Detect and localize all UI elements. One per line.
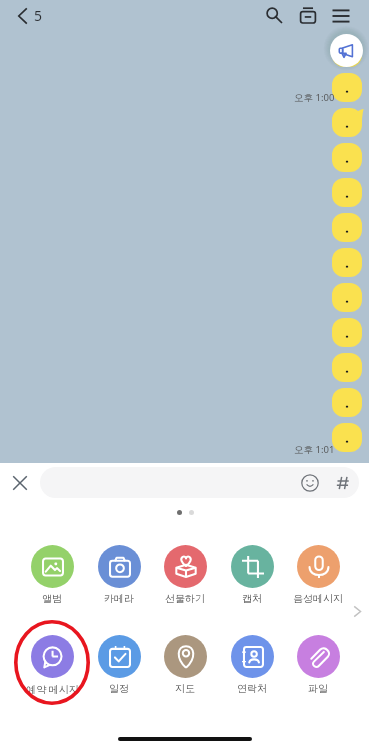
button[interactable]: 음성메시지 [284, 545, 352, 605]
button[interactable]: Message bubble [332, 73, 362, 102]
staticText: 연락처 [237, 682, 267, 695]
button[interactable]: Message bubble [332, 108, 362, 137]
button[interactable]: 캡처 [218, 545, 286, 605]
button[interactable]: 예약 메시지 [18, 635, 86, 696]
staticText: 캡처 [242, 592, 262, 605]
button[interactable]: 카메라 [85, 545, 153, 605]
staticText: 5 [34, 6, 43, 25]
button[interactable]: 지도 [151, 635, 219, 695]
staticText: 오후 1:01 [294, 443, 335, 456]
staticText: 예약 메시지 [26, 682, 79, 696]
button[interactable]: 파일 [284, 635, 352, 695]
staticText: 선물하기 [165, 592, 205, 605]
button[interactable]: Message bubble [332, 178, 362, 207]
button[interactable]: Hashtag [332, 472, 354, 494]
button[interactable]: Message bubble [332, 213, 362, 242]
staticText: 음성메시지 [293, 592, 343, 605]
button[interactable]: Message bubble [332, 423, 362, 452]
button[interactable]: Close panel [8, 471, 32, 495]
button[interactable]: 앨범 [18, 545, 86, 605]
staticText: 오후 1:00 [294, 91, 335, 104]
button[interactable]: Search [261, 2, 289, 30]
button[interactable]: 일정 [85, 635, 153, 695]
button[interactable]: Next page [350, 604, 365, 619]
button[interactable]: Back [17, 6, 43, 25]
button[interactable]: Emoji [299, 472, 321, 494]
button[interactable]: 선물하기 [151, 545, 219, 605]
button[interactable]: Message bubble [332, 318, 362, 347]
button[interactable]: Announcement [330, 34, 363, 67]
other: Back [17, 7, 31, 25]
staticText: 파일 [308, 682, 328, 695]
staticText: 지도 [175, 682, 195, 695]
staticText: 카메라 [104, 592, 134, 605]
staticText: 일정 [109, 682, 129, 695]
button[interactable]: Emoji [40, 467, 359, 498]
button[interactable]: Message bubble [332, 283, 362, 312]
button[interactable]: Message bubble [332, 143, 362, 172]
button[interactable]: Menu [327, 2, 355, 30]
button[interactable]: Message bubble [332, 248, 362, 277]
button[interactable]: Message bubble [332, 388, 362, 417]
button[interactable]: Message bubble [332, 353, 362, 382]
button[interactable]: 연락처 [218, 635, 286, 695]
button[interactable]: Archive [294, 2, 322, 30]
staticText: 앨범 [42, 592, 62, 605]
